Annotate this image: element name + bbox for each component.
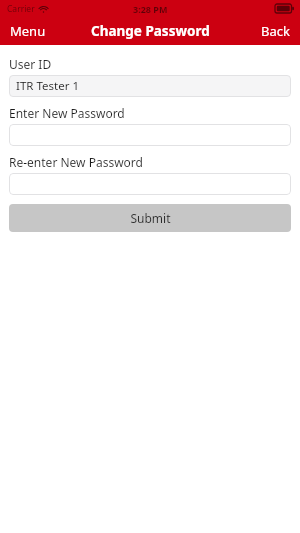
staticText: Enter New Password <box>9 105 125 121</box>
staticText: Menu <box>10 22 46 40</box>
button[interactable]: Password input <box>9 124 291 146</box>
staticText: Carrier <box>7 3 35 15</box>
staticText: ITR Tester 1 <box>16 78 79 94</box>
staticText: Submit <box>130 210 171 226</box>
staticText: Back <box>261 22 290 40</box>
button[interactable]: ITR Tester 1 <box>9 75 291 97</box>
staticText: User ID <box>9 56 52 72</box>
staticText: Change Password <box>91 22 210 40</box>
button[interactable]: Back <box>251 18 300 44</box>
staticText: 3:28 PM <box>133 3 168 15</box>
button[interactable]: Menu <box>0 18 56 44</box>
staticText: Re-enter New Password <box>9 154 143 170</box>
button[interactable]: Submit <box>9 204 291 232</box>
button[interactable]: Password input <box>9 173 291 195</box>
